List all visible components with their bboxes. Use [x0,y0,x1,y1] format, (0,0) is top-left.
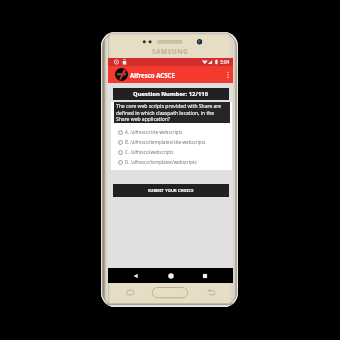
staticText: B. /alfresco/templates/site-webscripts [125,139,206,145]
button[interactable]: D. /alfresco/templates/webscripts [111,157,232,167]
staticText: D. /alfresco/templates/webscripts [125,159,197,165]
button[interactable]: Home [164,268,178,283]
button[interactable]: SUBMIT YOUR CHOICE [113,184,229,197]
button[interactable]: B. /alfresco/templates/site-webscripts [111,137,232,147]
staticText: A. /alfresco/site-webscripts [125,129,183,135]
button[interactable]: C. /alfresco/webscripts [111,147,232,157]
staticText: 3:04 [220,59,230,65]
button[interactable]: More options [222,66,233,83]
staticText: Question Number: 12/116 [133,90,209,98]
staticText: Alfresco ACSCE [130,71,175,79]
staticText: C. /alfresco/webscripts [125,149,174,155]
button[interactable]: A. /alfresco/site-webscripts [111,127,232,137]
button[interactable]: Recent apps [198,268,212,283]
staticText: SUBMIT YOUR CHOICE [148,188,194,193]
staticText: SAMSUNG [152,47,189,56]
staticText: The core web scripts provided with Share… [116,103,226,122]
button[interactable]: Back [129,268,143,283]
